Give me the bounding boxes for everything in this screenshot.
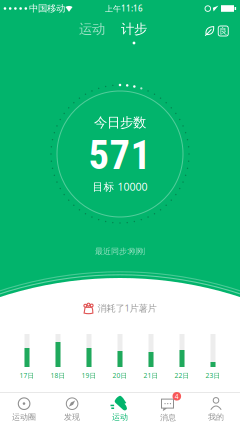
staticText: 计步 [121,21,147,37]
staticText: 21日 [143,371,158,380]
staticText: 22日 [174,371,189,380]
button[interactable]: 消息 [160,397,176,422]
staticText: 23日 [205,371,220,380]
staticText: 运动 [112,412,128,422]
staticText: 18日 [50,371,65,380]
staticText: 发现 [64,412,80,422]
staticText: 上午11:16 [105,3,143,14]
button[interactable]: 发现 [64,397,80,422]
button[interactable]: 空气质量 良 [205,25,228,36]
staticText: 中国移动 [29,3,65,14]
button[interactable]: 消耗了1片薯片 [83,302,156,314]
button[interactable]: 计步 [121,21,147,37]
staticText: 17日 [19,371,34,380]
button[interactable]: 运动圈 [12,397,36,422]
staticText: 20日 [112,371,127,380]
button[interactable]: 我的 [208,397,224,422]
staticText: 19日 [81,371,96,380]
staticText: 571 [88,131,151,179]
staticText: 运动圈 [12,412,36,422]
staticText: 良 [219,26,227,36]
staticText: 运动 [79,21,105,37]
staticText: 消耗了1片薯片 [97,302,156,314]
staticText: 我的 [208,412,224,422]
staticText: 消息 [160,413,176,422]
staticText: 目标 10000 [92,179,147,194]
staticText: 最近同步:刚刚 [95,246,145,256]
staticText: 今日步数 [94,114,146,131]
button[interactable]: 运动 [79,21,105,37]
staticText: 4 [175,392,179,401]
button[interactable]: 运动 [110,397,129,422]
